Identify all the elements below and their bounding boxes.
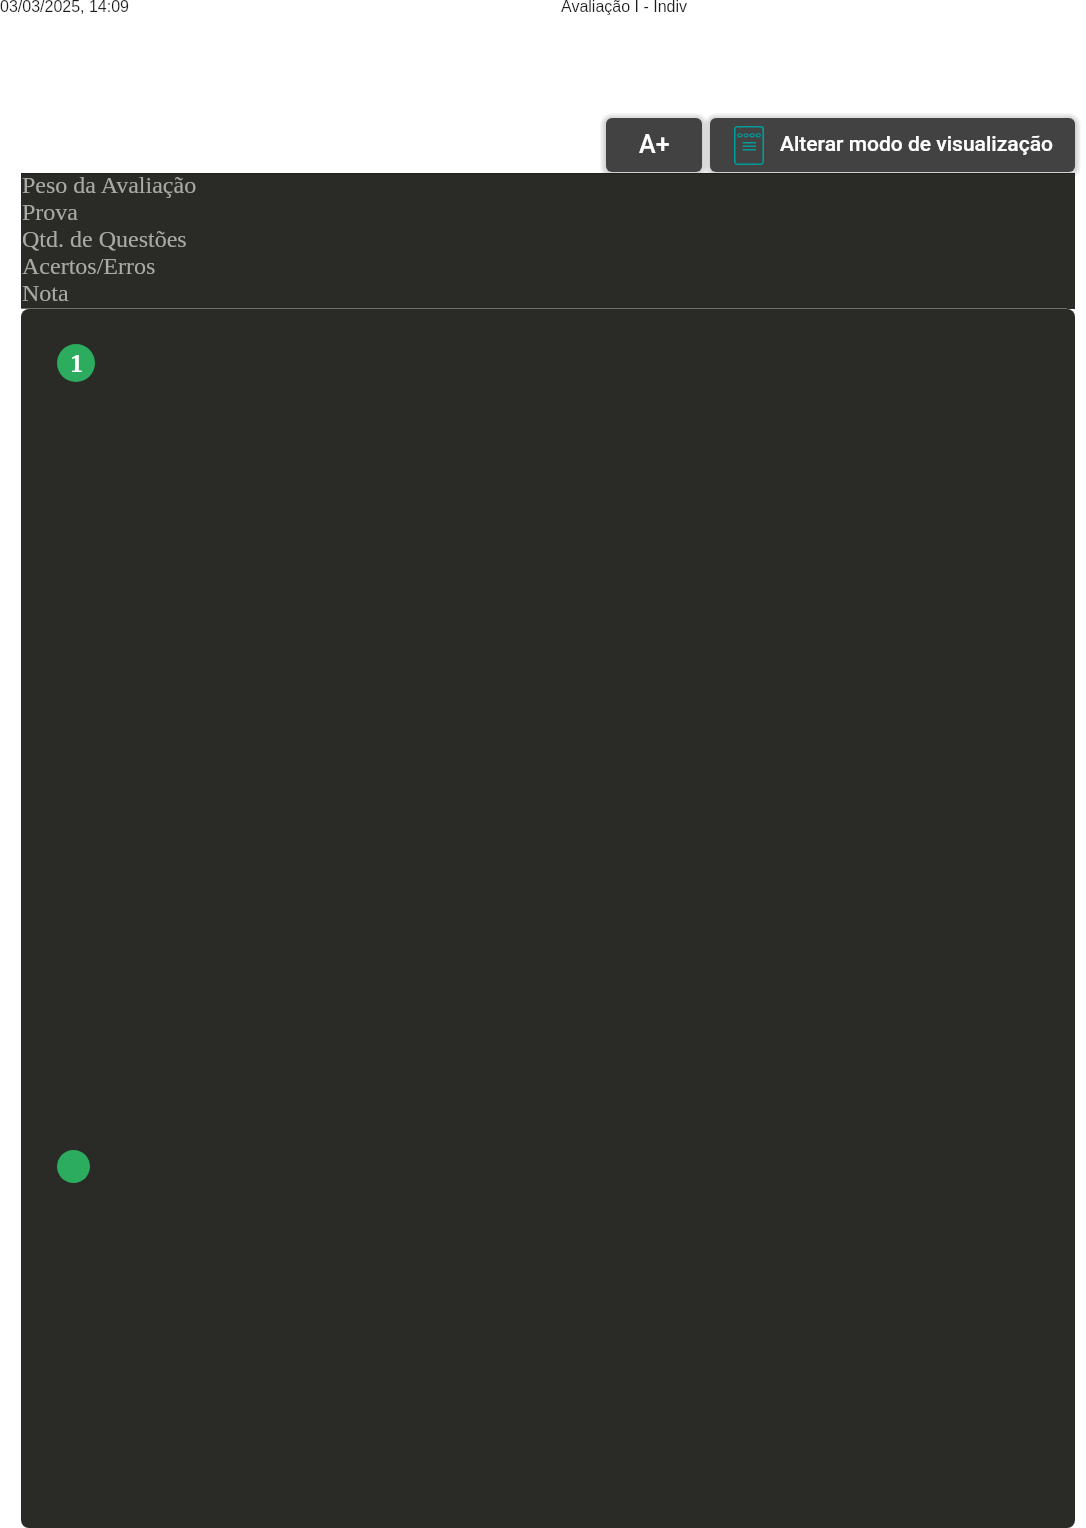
- staticText: Peso da Avaliação: [22, 172, 197, 199]
- button[interactable]: Alterar modo de visualização: [710, 118, 1075, 172]
- button[interactable]: A+: [606, 118, 702, 172]
- staticText: Nota: [22, 280, 69, 307]
- other: Alterar modo de visualização: [734, 126, 764, 165]
- staticText: 1: [70, 349, 83, 378]
- staticText: Avaliação I - Indiv: [561, 0, 687, 16]
- staticText: Acertos/Erros: [22, 253, 156, 280]
- button[interactable]: 1: [57, 344, 95, 382]
- staticText: Prova: [22, 199, 78, 226]
- staticText: A+: [639, 130, 670, 159]
- staticText: 03/03/2025, 14:09: [0, 0, 130, 16]
- staticText: Qtd. de Questões: [22, 226, 187, 253]
- staticText: Alterar modo de visualização: [780, 132, 1053, 157]
- button[interactable]: Alternativa selecionada: [57, 1150, 90, 1183]
